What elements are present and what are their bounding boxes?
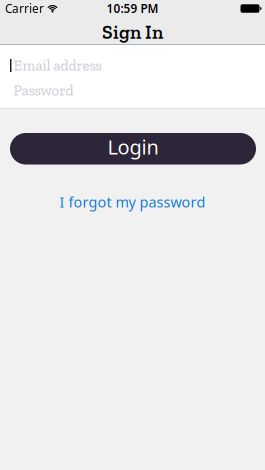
staticText: Email address <box>13 57 101 74</box>
button[interactable]: Email address <box>0 53 265 78</box>
staticText: Password <box>13 82 73 99</box>
staticText: 10:59 PM <box>106 0 158 16</box>
button[interactable]: I forgot my password <box>59 192 205 212</box>
staticText: Sign In <box>102 20 163 44</box>
button[interactable]: Password <box>0 78 265 103</box>
staticText: I forgot my password <box>59 192 205 212</box>
button[interactable]: Login <box>10 133 256 164</box>
staticText: Login <box>107 133 158 160</box>
staticText: Carrier <box>5 0 44 16</box>
